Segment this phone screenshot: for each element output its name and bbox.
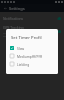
staticText: Set Timer Profil [11,35,42,41]
button[interactable]: Mediumpfff/Pfff [6,52,58,60]
button[interactable]: Back [2,5,8,11]
staticText: Mediumpfff/Pfff [17,54,42,58]
button[interactable] [0,0,64,100]
staticText: GPS Tracking [3,25,24,30]
button[interactable]: Liebling [6,60,58,68]
button[interactable]: Toggle [56,30,61,33]
button[interactable]: Toggle [56,17,61,20]
staticText: Lorem ipsum dolor sit amet consectetur a… [3,31,50,37]
button[interactable]: Slow [6,44,58,52]
button[interactable]: GPS Tracking [0,23,64,39]
button[interactable]: Set Timer Profil [6,29,58,74]
staticText: Liebling [17,62,30,66]
staticText: Settings [9,6,25,11]
staticText: Notifications [3,16,24,21]
button[interactable]: Notifications [0,14,64,23]
staticText: Slow [17,46,25,50]
